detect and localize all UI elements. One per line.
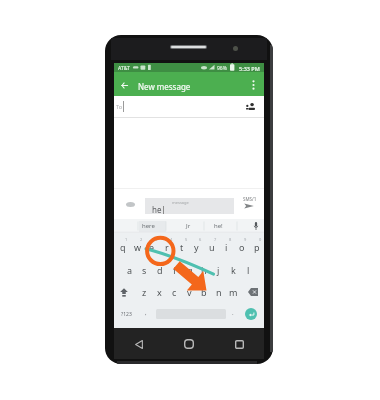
button[interactable] — [167, 281, 182, 302]
button[interactable] — [249, 236, 264, 257]
button[interactable] — [211, 281, 226, 302]
staticText: message — [172, 200, 189, 205]
button[interactable]: Add recipient — [243, 99, 259, 115]
staticText: g — [187, 264, 193, 276]
staticText: New message — [138, 81, 191, 92]
staticText: j — [217, 264, 220, 276]
staticText: e — [149, 241, 155, 253]
button[interactable]: Home — [180, 335, 198, 353]
button[interactable] — [130, 236, 145, 257]
button[interactable]: Recent apps — [230, 335, 248, 353]
button[interactable]: Navigate up — [115, 76, 133, 94]
button[interactable]: he! — [204, 219, 232, 233]
staticText: b — [201, 286, 207, 298]
button[interactable] — [226, 259, 241, 280]
staticText: 5 — [185, 237, 188, 242]
button[interactable] — [189, 236, 204, 257]
button[interactable] — [226, 281, 241, 302]
staticText: 9 — [244, 237, 247, 242]
staticText: ?123 — [121, 311, 132, 318]
button[interactable] — [204, 236, 219, 257]
staticText: a — [127, 264, 133, 276]
button[interactable] — [137, 281, 152, 302]
button[interactable] — [152, 259, 167, 280]
button[interactable] — [219, 236, 234, 257]
button[interactable]: here — [134, 219, 162, 233]
button[interactable] — [196, 281, 211, 302]
staticText: 8 — [229, 237, 232, 242]
staticText: u — [209, 241, 215, 253]
staticText: 4 — [170, 237, 173, 242]
button[interactable] — [211, 259, 226, 280]
staticText: y — [194, 241, 199, 253]
button[interactable] — [182, 281, 197, 302]
button[interactable]: , — [139, 305, 153, 323]
staticText: v — [187, 286, 192, 298]
button[interactable]: Voice input — [250, 220, 262, 232]
staticText: o — [239, 241, 245, 253]
staticText: 6 — [199, 237, 202, 242]
staticText: . — [232, 309, 234, 317]
staticText: i — [225, 241, 228, 253]
staticText: , — [145, 309, 147, 317]
staticText: l — [247, 264, 250, 276]
button[interactable] — [196, 259, 211, 280]
staticText: Jr — [186, 222, 191, 230]
staticText: m — [229, 286, 238, 298]
staticText: p — [254, 241, 260, 253]
staticText: 3 — [155, 237, 158, 242]
staticText: he — [152, 204, 162, 215]
staticText: r — [165, 241, 169, 253]
staticText: d — [157, 264, 163, 276]
staticText: 2 — [140, 237, 143, 242]
staticText: z — [142, 286, 147, 298]
staticText: s — [142, 264, 147, 276]
button[interactable] — [144, 236, 159, 257]
staticText: 0 — [259, 237, 262, 242]
button[interactable] — [114, 96, 264, 117]
button[interactable]: Backspace — [243, 283, 263, 301]
staticText: x — [157, 286, 162, 298]
staticText: h — [201, 264, 207, 276]
button[interactable]: Enter — [245, 308, 257, 320]
staticText: AT&T — [118, 65, 130, 72]
staticText: 5:33 PM — [239, 65, 260, 72]
button[interactable] — [137, 259, 152, 280]
staticText: f — [173, 264, 177, 276]
button[interactable]: Shift — [115, 283, 133, 301]
button[interactable] — [114, 305, 140, 323]
staticText: w — [134, 241, 142, 253]
button[interactable] — [159, 236, 174, 257]
button[interactable]: Back — [130, 335, 148, 353]
button[interactable]: Send message — [240, 194, 260, 214]
staticText: To — [116, 103, 123, 110]
button[interactable]: Insert emoji — [124, 198, 136, 210]
button[interactable] — [152, 281, 167, 302]
button[interactable]: More options — [244, 76, 262, 94]
staticText: k — [231, 264, 236, 276]
button[interactable] — [174, 236, 189, 257]
staticText: c — [172, 286, 177, 298]
button[interactable]: Jr — [174, 219, 202, 233]
staticText: 96% — [217, 65, 227, 72]
button[interactable] — [241, 259, 256, 280]
staticText: he! — [214, 222, 223, 230]
staticText: SMS/1 — [243, 196, 257, 202]
staticText: 7 — [214, 237, 217, 242]
button[interactable] — [234, 236, 249, 257]
staticText: q — [120, 241, 126, 253]
button[interactable] — [122, 259, 137, 280]
staticText: here — [142, 222, 155, 230]
staticText: n — [216, 286, 222, 298]
button[interactable]: . — [226, 305, 240, 323]
button[interactable] — [167, 259, 182, 280]
staticText: 1 — [125, 237, 128, 242]
button[interactable] — [115, 236, 130, 257]
staticText: t — [180, 241, 184, 253]
button[interactable] — [182, 259, 197, 280]
